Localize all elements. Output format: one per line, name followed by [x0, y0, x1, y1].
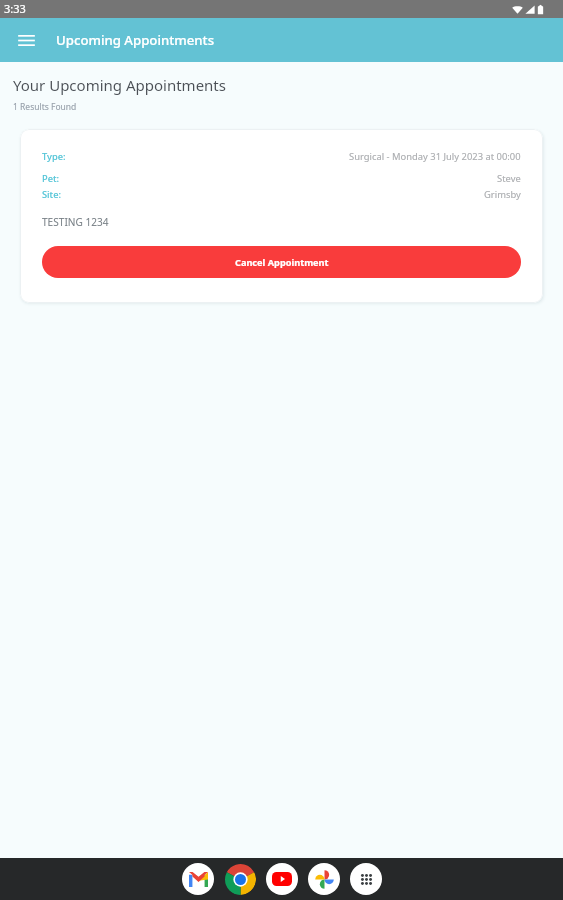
- staticText: Upcoming Appointments: [56, 31, 215, 49]
- staticText: Grimsby: [484, 188, 521, 201]
- button[interactable]: Gmail: [182, 863, 214, 895]
- staticText: 1 Results Found: [13, 101, 77, 113]
- button[interactable]: Chrome: [224, 863, 256, 895]
- staticText: Cancel Appointment: [235, 256, 329, 269]
- button[interactable]: Open navigation menu: [11, 25, 41, 55]
- button[interactable]: YouTube: [266, 863, 298, 895]
- staticText: Pet:: [42, 172, 60, 185]
- staticText: Surgical - Monday 31 July 2023 at 00:00: [349, 150, 521, 163]
- button[interactable]: All apps: [350, 863, 382, 895]
- staticText: Type:: [42, 150, 66, 163]
- button[interactable]: Google Photos: [308, 863, 340, 895]
- button[interactable]: Cancel Appointment: [42, 246, 521, 278]
- staticText: Your Upcoming Appointments: [13, 75, 226, 95]
- staticText: TESTING 1234: [42, 215, 109, 229]
- staticText: Steve: [497, 172, 521, 185]
- staticText: Site:: [42, 188, 62, 201]
- staticText: 3:33: [4, 1, 26, 16]
